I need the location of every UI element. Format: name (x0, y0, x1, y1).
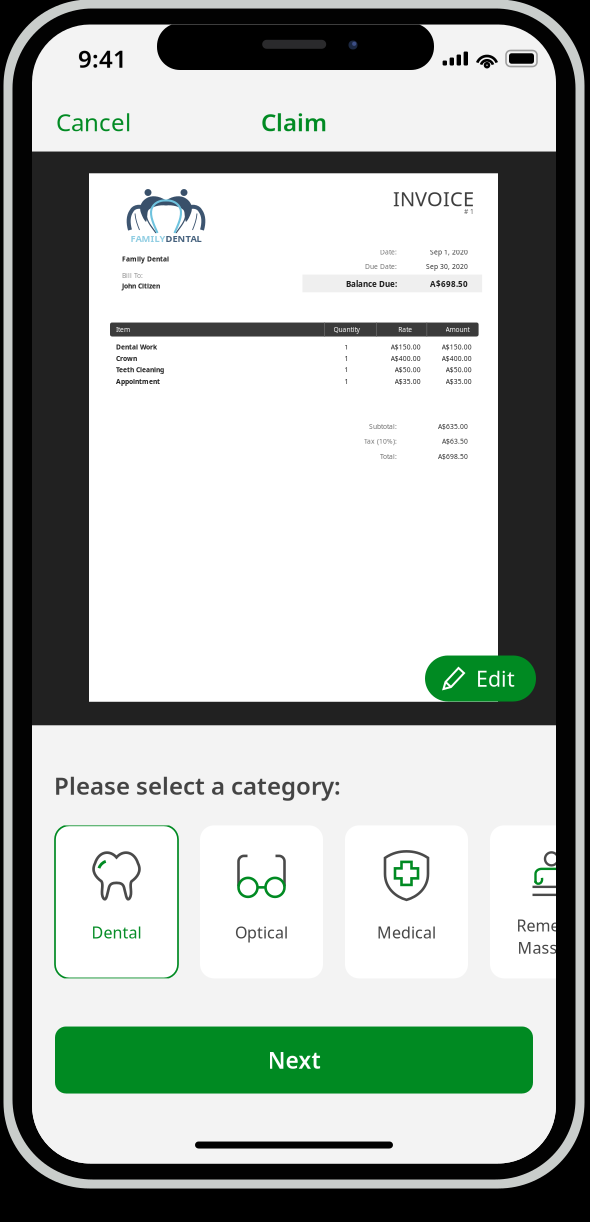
staticText: INVOICE (393, 185, 474, 212)
staticText: Edit (476, 664, 515, 693)
staticText: Appointment (116, 377, 160, 386)
staticText: Teeth Cleaning (116, 365, 164, 374)
staticText: Dental (91, 922, 141, 943)
staticText: Due Date: (365, 262, 397, 271)
staticText: Family Dental (122, 255, 169, 263)
button[interactable]: Edit (425, 655, 536, 701)
staticText: Medical (377, 922, 436, 943)
staticText: A$35.00 (395, 377, 421, 386)
button[interactable]: Cancel (32, 92, 147, 151)
staticText: 9:41 (78, 43, 127, 74)
staticText: A$50.00 (395, 365, 421, 374)
staticText: FAMILY (130, 232, 165, 245)
staticText: DENTAL (165, 232, 201, 245)
button[interactable]: Medical (345, 825, 468, 978)
staticText: Bill To: (122, 271, 143, 280)
staticText: Balance Due: (346, 278, 397, 289)
staticText: Massage (517, 937, 585, 958)
button[interactable]: Optical (200, 825, 323, 978)
staticText: A$698.50 (438, 452, 468, 461)
staticText: # 1 (464, 207, 474, 216)
button[interactable]: Dental (55, 825, 178, 978)
staticText: Please select a category: (54, 769, 341, 801)
staticText: Remedial (516, 915, 586, 936)
staticText: Sep 1, 2020 (430, 248, 468, 256)
staticText: A$150.00 (391, 343, 421, 351)
staticText: 1 (344, 354, 348, 363)
staticText: Rate (398, 325, 412, 334)
staticText: 1 (344, 343, 348, 351)
staticText: Total: (380, 452, 397, 461)
staticText: Sep 30, 2020 (426, 262, 468, 271)
staticText: A$400.00 (391, 354, 421, 363)
staticText: Dental Work (116, 343, 157, 351)
staticText: Tax (10%): (364, 437, 397, 446)
staticText: Subtotal: (369, 422, 397, 431)
staticText: Claim (261, 106, 327, 138)
staticText: A$635.00 (438, 422, 468, 431)
staticText: Amount (445, 325, 469, 334)
staticText: A$50.00 (446, 365, 472, 374)
staticText: Quantity (333, 325, 359, 334)
staticText: 1 (344, 377, 348, 386)
staticText: Crown (116, 354, 137, 363)
staticText: Date: (380, 248, 397, 256)
staticText: Cancel (56, 106, 131, 138)
staticText: Item (116, 325, 130, 334)
staticText: A$400.00 (442, 354, 472, 363)
staticText: A$35.00 (446, 377, 472, 386)
staticText: A$63.50 (442, 437, 468, 446)
staticText: John Citizen (122, 282, 160, 290)
button[interactable]: Next (55, 1026, 533, 1093)
button[interactable]: Remedial (490, 825, 590, 978)
staticText: Optical (235, 922, 288, 943)
staticText: Next (267, 1045, 320, 1075)
staticText: A$698.50 (430, 278, 468, 289)
staticText: 1 (344, 365, 348, 374)
staticText: A$150.00 (442, 343, 472, 351)
